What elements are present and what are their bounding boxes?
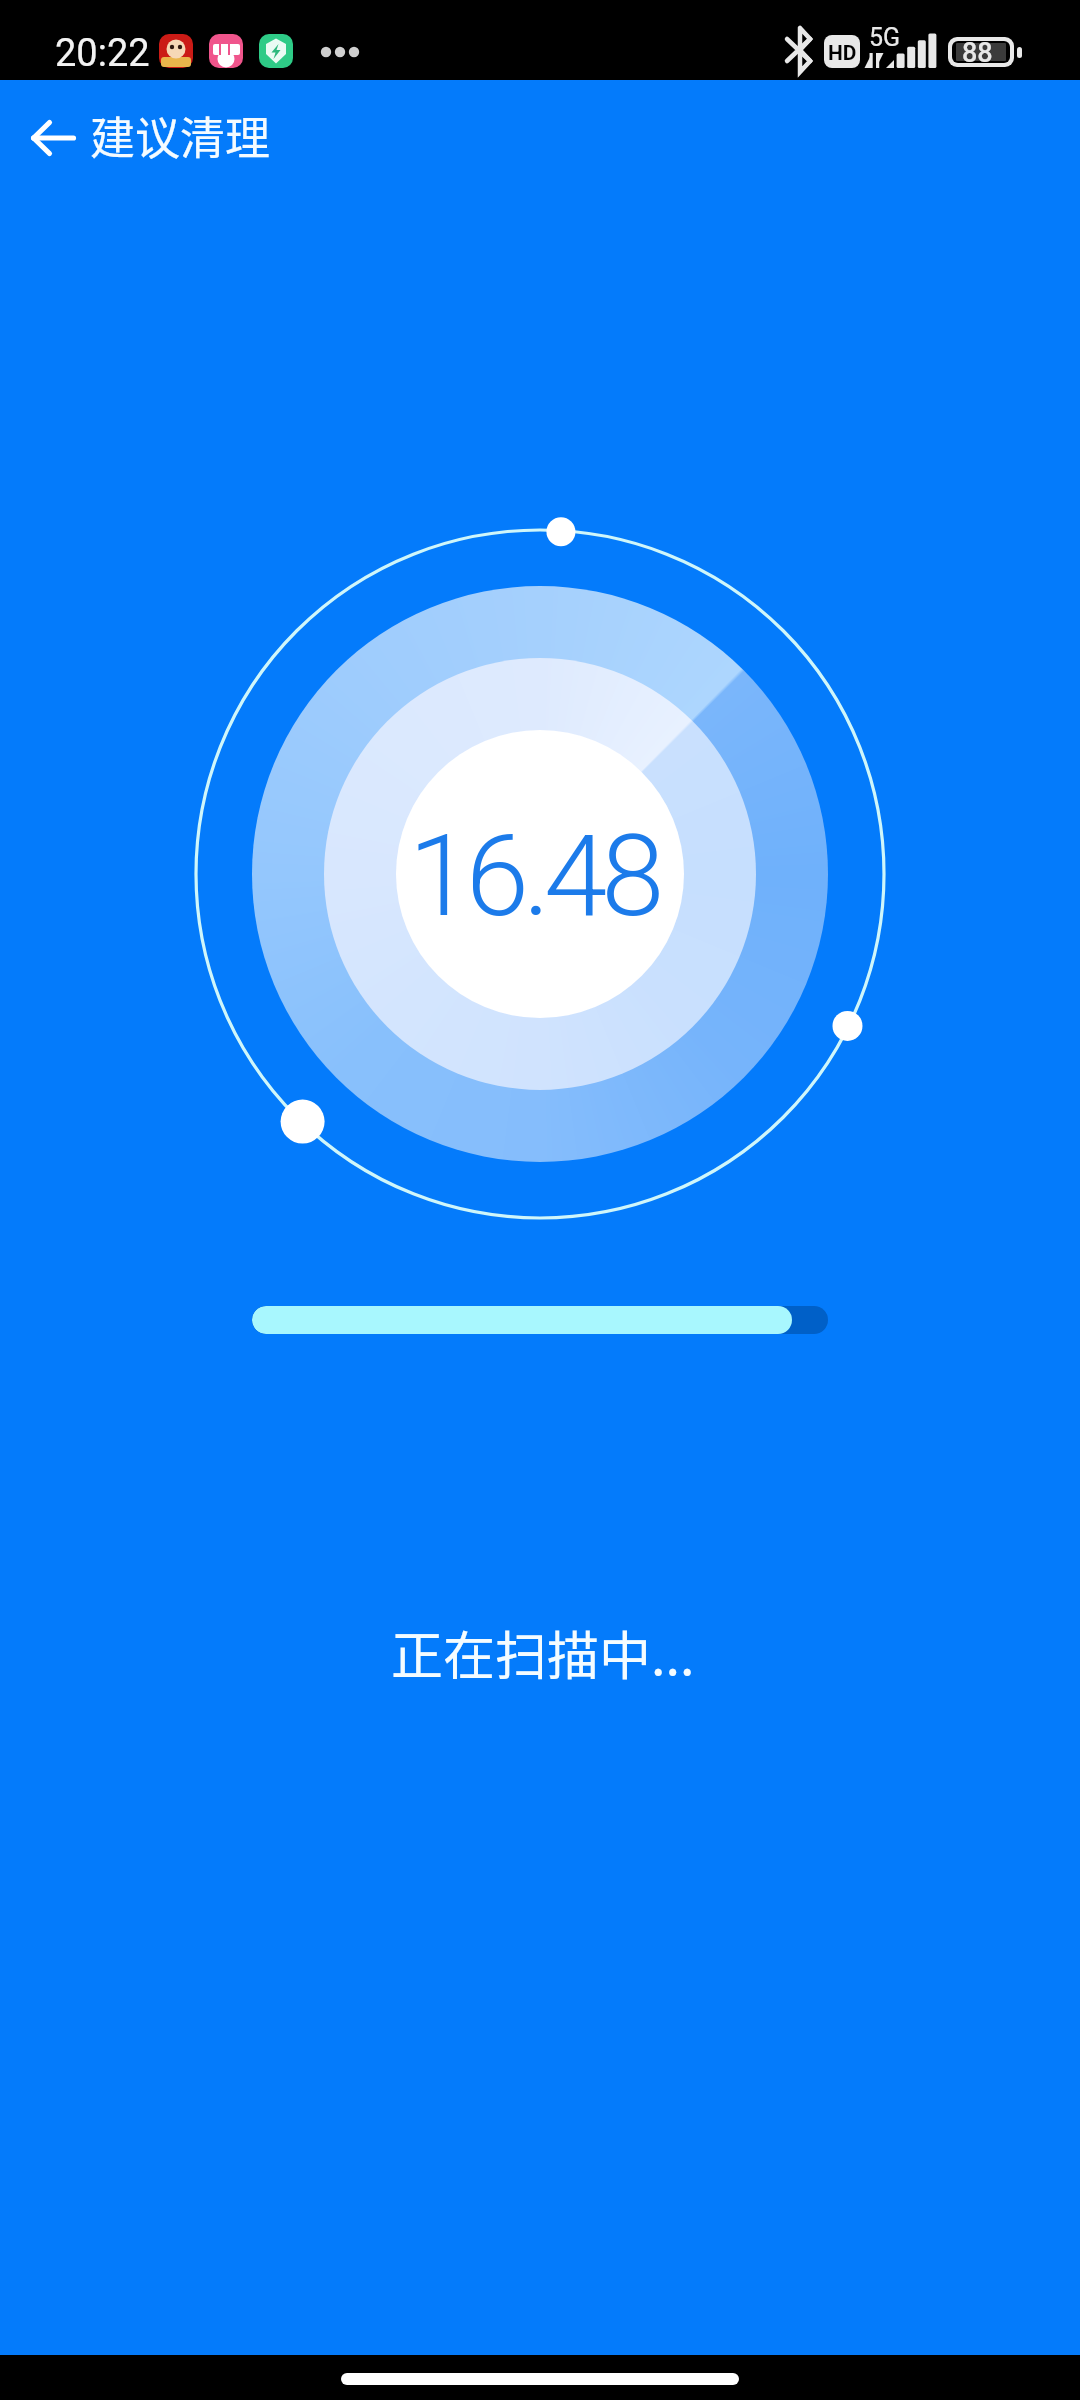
staticText: HD: [828, 41, 857, 66]
button[interactable]: Back: [0, 83, 106, 193]
staticText: 5G: [869, 23, 901, 52]
staticText: 正在扫描中...: [391, 1615, 695, 1690]
staticText: 88: [962, 37, 993, 69]
staticText: 16.48: [408, 809, 659, 943]
staticText: 20:22: [55, 31, 150, 76]
staticText: 建议清理: [90, 103, 271, 168]
